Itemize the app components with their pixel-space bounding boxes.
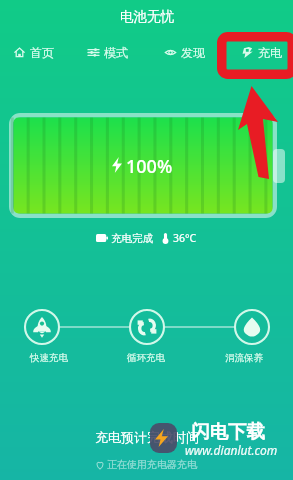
button[interactable]: 快速充电 xyxy=(0,352,97,364)
staticText: 正在使用充电器充电 xyxy=(107,458,197,471)
staticText: 发现 xyxy=(181,45,205,60)
staticText: 充电 xyxy=(258,45,282,60)
staticText: 100% xyxy=(126,154,173,176)
button[interactable]: 模式 xyxy=(88,39,130,65)
staticText: 循环充电 xyxy=(127,352,165,364)
staticText: www.dianlut.com xyxy=(185,442,278,458)
staticText: 充电完成 xyxy=(111,232,153,245)
button[interactable]: 涓流保养 xyxy=(195,352,293,364)
staticText: 电池无忧 xyxy=(120,8,174,25)
button[interactable]: 首页 xyxy=(14,39,56,65)
staticText: 首页 xyxy=(30,45,54,60)
staticText: 闪电下载 xyxy=(191,420,265,443)
button[interactable]: 充电 xyxy=(242,39,284,65)
button[interactable]: 发现 xyxy=(165,39,207,65)
staticText: 涓流保养 xyxy=(225,352,263,364)
staticText: 快速充电 xyxy=(30,352,68,364)
staticText: 36°C xyxy=(173,231,197,245)
staticText: 充电预计完成时间 xyxy=(95,429,199,445)
button[interactable]: 循环充电 xyxy=(97,352,195,364)
staticText: 模式 xyxy=(104,45,128,60)
